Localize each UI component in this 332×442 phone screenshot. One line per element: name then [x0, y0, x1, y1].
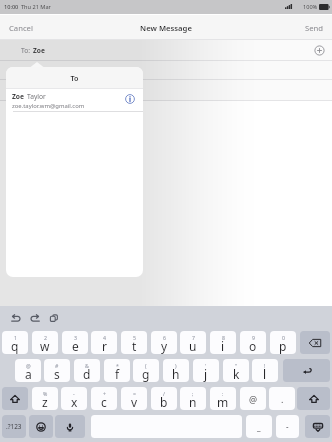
- button[interactable]: +: [91, 387, 117, 410]
- staticText: w: [40, 338, 50, 354]
- button[interactable]: @: [240, 387, 266, 410]
- button[interactable]: Backspace: [300, 331, 330, 354]
- staticText: p: [279, 338, 287, 354]
- staticText: c: [101, 394, 107, 410]
- button[interactable]: Shift: [297, 387, 330, 410]
- staticText: %: [43, 390, 48, 397]
- staticText: t: [132, 338, 137, 354]
- button[interactable]: Hide keyboard: [305, 415, 330, 438]
- staticText: 5: [133, 334, 136, 341]
- button[interactable]: .?123: [2, 415, 26, 438]
- staticText: 8: [222, 334, 225, 341]
- staticText: 0: [282, 334, 285, 341]
- staticText: 10:00: [4, 3, 19, 11]
- button[interactable]: -: [276, 415, 299, 438]
- button[interactable]: Contact info: [125, 94, 135, 104]
- staticText: ': [205, 362, 207, 369]
- staticText: -: [73, 390, 75, 397]
- staticText: 100%: [303, 3, 318, 11]
- staticText: zoe.taylor.wm@gmail.com: [12, 102, 85, 110]
- staticText: x: [71, 394, 78, 410]
- button[interactable]: Dictation: [55, 415, 85, 438]
- button[interactable]: .: [269, 387, 295, 410]
- staticText: !: [264, 362, 266, 369]
- staticText: ): [175, 362, 177, 369]
- button[interactable]: ': [193, 359, 219, 382]
- staticText: q: [11, 338, 19, 354]
- staticText: @: [26, 362, 31, 369]
- button[interactable]: !: [252, 359, 278, 382]
- staticText: b: [160, 394, 168, 410]
- button[interactable]: 2: [32, 331, 58, 354]
- staticText: y: [161, 338, 168, 354]
- button[interactable]: ": [223, 359, 249, 382]
- staticText: Taylor: [27, 92, 46, 101]
- button[interactable]: ;: [180, 387, 206, 410]
- button[interactable]: 6: [151, 331, 177, 354]
- staticText: h: [172, 366, 180, 382]
- staticText: z: [42, 394, 48, 410]
- button[interactable]: 3: [62, 331, 88, 354]
- staticText: &: [85, 362, 89, 369]
- staticText: j: [204, 366, 208, 382]
- button[interactable]: *: [104, 359, 130, 382]
- staticText: e: [72, 338, 79, 354]
- staticText: @: [249, 393, 258, 405]
- button[interactable]: Emoji: [29, 415, 53, 438]
- button[interactable]: -: [61, 387, 87, 410]
- staticText: a: [25, 366, 32, 382]
- button[interactable]: &: [74, 359, 100, 382]
- button[interactable]: 1: [2, 331, 28, 354]
- button[interactable]: Add recipient: [312, 43, 327, 58]
- button[interactable]: 7: [180, 331, 206, 354]
- staticText: #: [55, 362, 59, 369]
- staticText: g: [142, 366, 150, 382]
- staticText: s: [54, 366, 60, 382]
- staticText: 9: [252, 334, 255, 341]
- button[interactable]: (: [133, 359, 159, 382]
- staticText: 3: [74, 334, 77, 341]
- button[interactable]: @: [15, 359, 41, 382]
- staticText: 1: [14, 334, 17, 341]
- staticText: f: [115, 366, 120, 382]
- staticText: 2: [44, 334, 47, 341]
- button[interactable]: 5: [121, 331, 147, 354]
- staticText: 6: [163, 334, 166, 341]
- button[interactable]: ): [163, 359, 189, 382]
- button[interactable]: /: [151, 387, 177, 410]
- staticText: 7: [192, 334, 195, 341]
- button[interactable]: _: [246, 415, 272, 438]
- button[interactable]: :: [210, 387, 236, 410]
- button[interactable]: Return: [283, 359, 330, 382]
- button[interactable]: 4: [91, 331, 117, 354]
- button[interactable]: Send: [296, 18, 332, 38]
- staticText: To:: [21, 46, 30, 55]
- staticText: o: [249, 338, 257, 354]
- button[interactable]: 8: [210, 331, 236, 354]
- staticText: (: [145, 362, 147, 369]
- staticText: d: [83, 366, 91, 382]
- staticText: u: [189, 338, 197, 354]
- staticText: /: [163, 390, 165, 397]
- button[interactable]: Zoe: [6, 89, 143, 112]
- button[interactable]: #: [44, 359, 70, 382]
- button[interactable]: Cancel: [0, 18, 42, 38]
- staticText: 4: [103, 334, 106, 341]
- staticText: n: [189, 394, 197, 410]
- staticText: Send: [305, 23, 324, 33]
- staticText: m: [217, 394, 229, 410]
- staticText: ": [235, 362, 238, 369]
- staticText: .?123: [6, 422, 22, 431]
- button[interactable]: %: [32, 387, 58, 410]
- button[interactable]: 9: [240, 331, 266, 354]
- button[interactable]: 0: [270, 331, 296, 354]
- staticText: New Message: [0, 23, 332, 33]
- button[interactable]: =: [121, 387, 147, 410]
- staticText: r: [102, 338, 107, 354]
- button[interactable]: Undo: [10, 312, 22, 324]
- button[interactable]: Shift: [2, 387, 28, 410]
- button[interactable]: Redo: [29, 312, 41, 324]
- staticText: +: [103, 390, 106, 397]
- button[interactable]: Paste: [48, 312, 60, 324]
